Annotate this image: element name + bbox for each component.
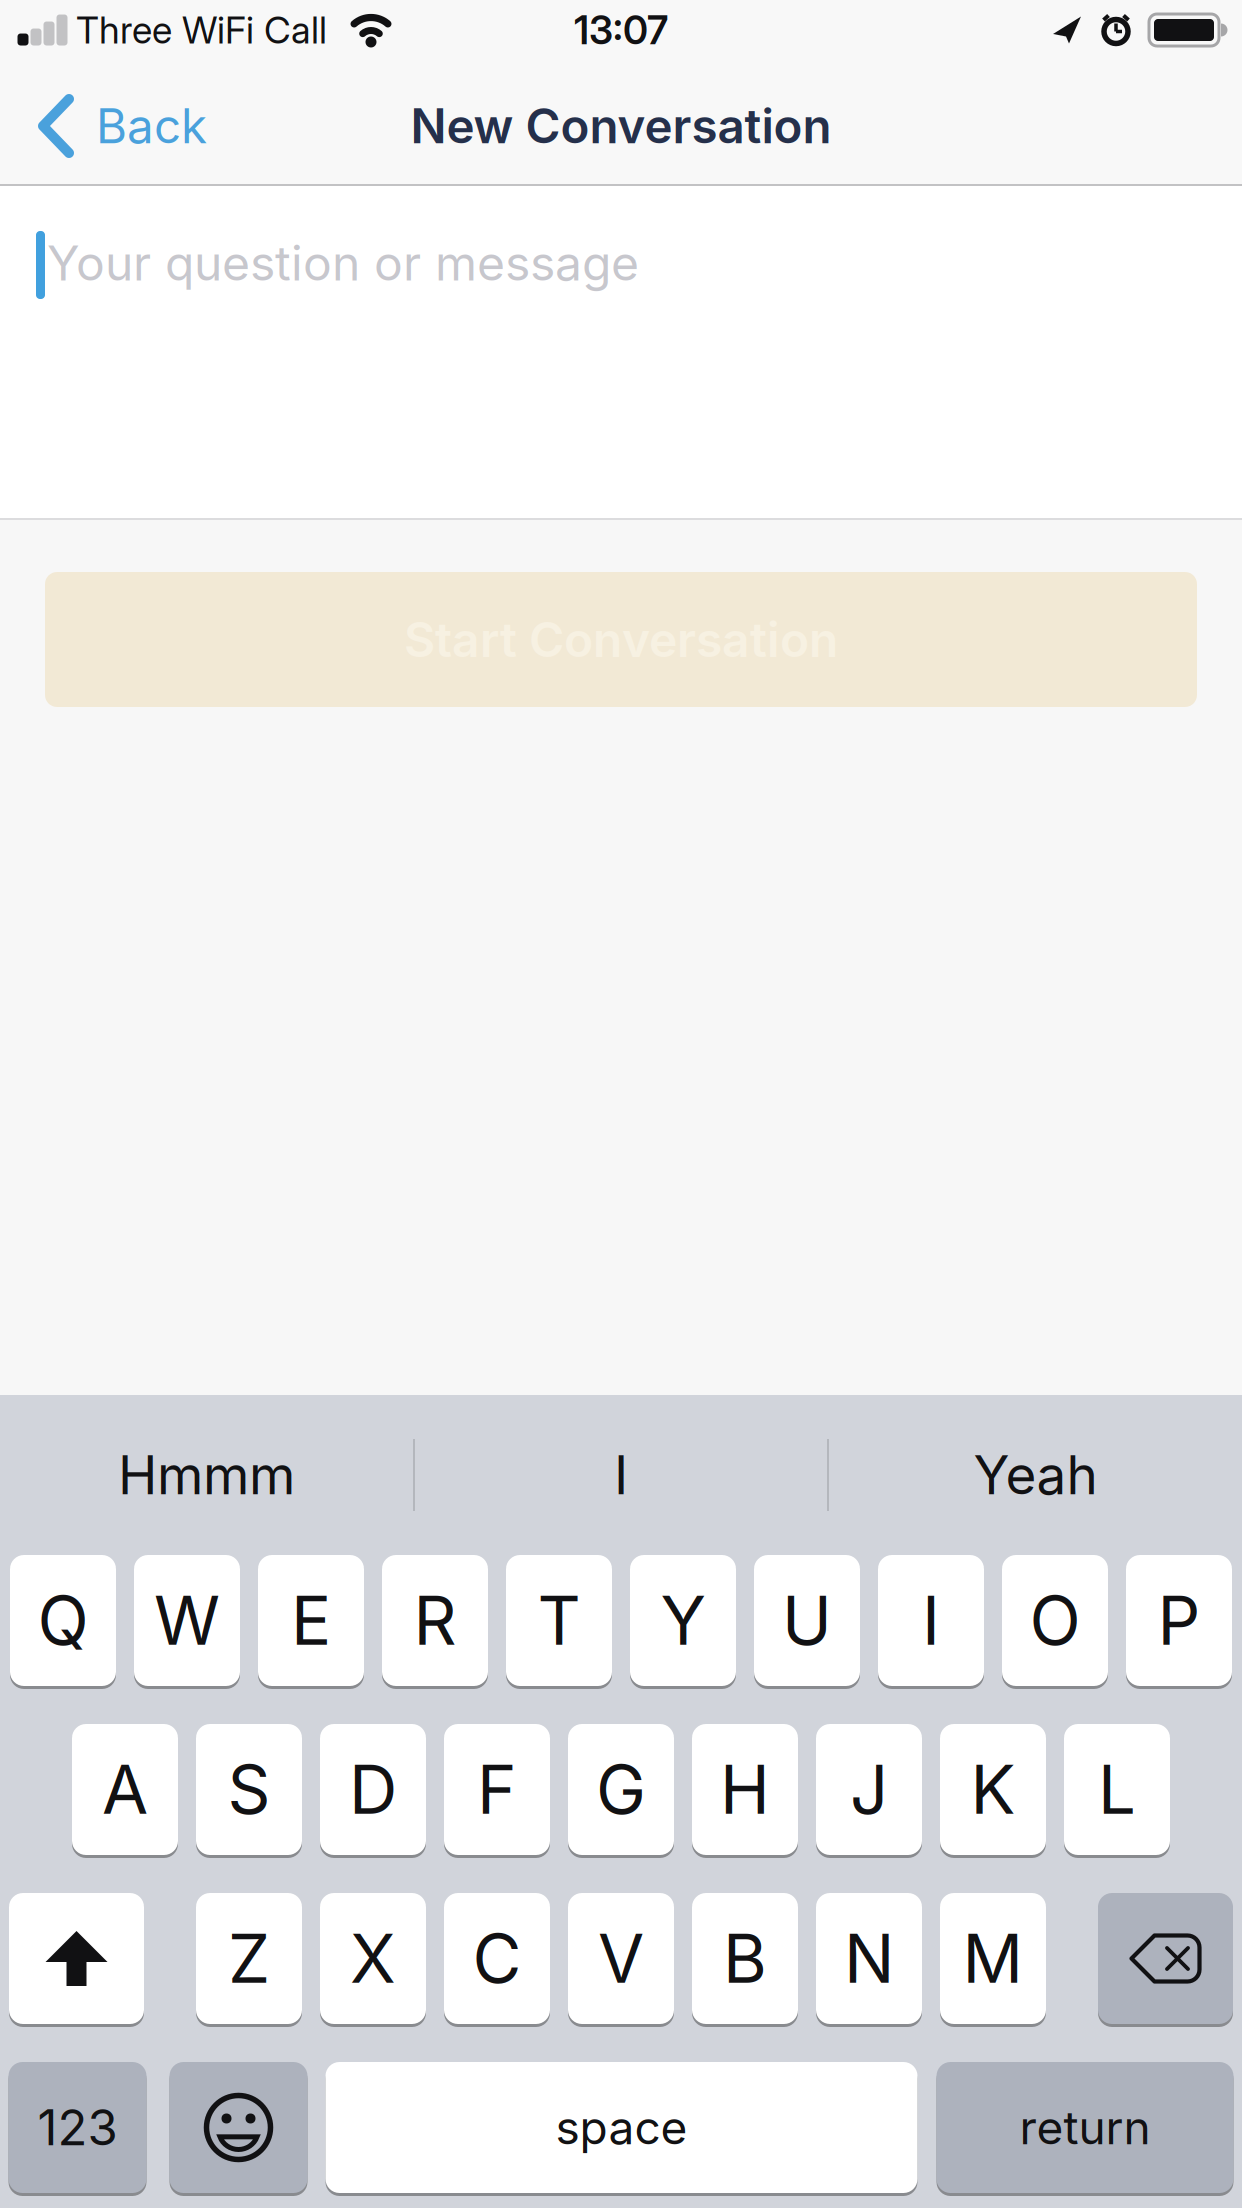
button[interactable]: U — [754, 1555, 860, 1686]
staticText: Y — [660, 1580, 705, 1661]
staticText: U — [782, 1580, 832, 1661]
button[interactable]: S — [196, 1724, 302, 1855]
staticText: C — [472, 1918, 521, 1999]
staticText: V — [598, 1918, 644, 1999]
staticText: J — [850, 1749, 888, 1830]
button[interactable]: I — [878, 1555, 984, 1686]
button[interactable]: Your question or message — [0, 186, 1242, 518]
button[interactable]: J — [816, 1724, 922, 1855]
button[interactable]: B — [692, 1893, 798, 2024]
button[interactable]: F — [444, 1724, 550, 1855]
button[interactable]: Shift — [9, 1893, 144, 2024]
button[interactable]: C — [444, 1893, 550, 2024]
staticText: Yeah — [973, 1443, 1097, 1507]
staticText: I — [922, 1580, 940, 1661]
button[interactable]: G — [568, 1724, 674, 1855]
staticText: Back — [96, 97, 207, 155]
button[interactable]: L — [1064, 1724, 1170, 1855]
staticText: K — [970, 1749, 1015, 1830]
button[interactable]: Z — [196, 1893, 302, 2024]
button[interactable]: Hmmm — [0, 1395, 413, 1555]
staticText: O — [1029, 1580, 1080, 1661]
button[interactable]: D — [320, 1724, 426, 1855]
staticText: Q — [37, 1580, 88, 1661]
button[interactable]: space — [325, 2062, 917, 2193]
staticText: I — [614, 1443, 628, 1507]
button[interactable]: E — [258, 1555, 364, 1686]
button[interactable]: Numbers — [8, 2062, 146, 2193]
staticText: T — [537, 1580, 580, 1661]
staticText: G — [596, 1749, 646, 1830]
staticText: space — [555, 2100, 687, 2155]
staticText: P — [1157, 1580, 1200, 1661]
staticText: W — [154, 1580, 220, 1661]
staticText: L — [1098, 1749, 1136, 1830]
staticText: Z — [228, 1918, 270, 1999]
button[interactable]: X — [320, 1893, 426, 2024]
button[interactable]: R — [382, 1555, 488, 1686]
staticText: 13:07 — [574, 6, 668, 54]
button[interactable]: A — [72, 1724, 178, 1855]
staticText: H — [720, 1749, 770, 1830]
button[interactable]: N — [816, 1893, 922, 2024]
button[interactable]: Delete — [1098, 1893, 1233, 2024]
staticText: Hmmm — [118, 1443, 295, 1507]
button[interactable]: Back — [0, 94, 207, 158]
staticText: R — [413, 1580, 456, 1661]
button[interactable]: P — [1126, 1555, 1232, 1686]
staticText: A — [102, 1749, 148, 1830]
staticText: N — [844, 1918, 894, 1999]
staticText: B — [723, 1918, 767, 1999]
staticText: Three WiFi Call — [76, 8, 327, 52]
staticText: D — [349, 1749, 397, 1830]
staticText: M — [962, 1918, 1023, 1999]
button[interactable]: I — [415, 1395, 827, 1555]
staticText: F — [477, 1749, 517, 1830]
button[interactable]: O — [1002, 1555, 1108, 1686]
button[interactable]: Q — [10, 1555, 116, 1686]
staticText: New Conversation — [410, 97, 831, 155]
button[interactable]: V — [568, 1893, 674, 2024]
button[interactable]: K — [940, 1724, 1046, 1855]
button[interactable]: T — [506, 1555, 612, 1686]
staticText: Start Conversation — [404, 610, 838, 669]
button[interactable]: Emoji — [169, 2062, 307, 2193]
staticText: S — [227, 1749, 270, 1830]
staticText: X — [350, 1918, 396, 1999]
staticText: E — [291, 1580, 331, 1661]
button[interactable]: M — [940, 1893, 1046, 2024]
staticText: return — [1019, 2100, 1150, 2155]
staticText: 123 — [37, 2098, 117, 2157]
button[interactable]: Yeah — [829, 1395, 1242, 1555]
button[interactable]: Y — [630, 1555, 736, 1686]
button[interactable]: H — [692, 1724, 798, 1855]
button[interactable]: W — [134, 1555, 240, 1686]
staticText: Your question or message — [47, 234, 639, 292]
button[interactable]: return — [936, 2062, 1233, 2193]
